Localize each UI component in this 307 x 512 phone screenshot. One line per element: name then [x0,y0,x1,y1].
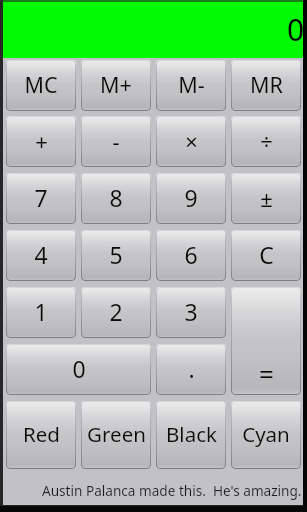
button[interactable]: + [6,116,76,167]
button[interactable]: 4 [6,230,76,281]
staticText: 2 [109,296,123,327]
button[interactable]: MR [231,60,301,111]
staticText: C [259,239,274,270]
staticText: 5 [109,239,123,270]
button[interactable]: Black [156,401,226,469]
staticText: ÷ [260,126,273,156]
staticText: 1 [34,296,48,327]
staticText: 9 [184,182,198,213]
button[interactable]: 0 [6,344,151,395]
staticText: - [112,126,120,156]
button[interactable]: C [231,230,301,281]
staticText: Red [23,420,60,448]
button[interactable]: 1 [6,287,76,338]
staticText: 6 [184,239,198,270]
button[interactable]: 5 [81,230,151,281]
staticText: Green [87,420,146,448]
staticText: Austin Palanca made this. He's amazing. [42,481,302,500]
button[interactable]: × [156,116,226,167]
staticText: 0 [287,9,305,50]
button[interactable]: 2 [81,287,151,338]
button[interactable]: . [156,344,226,395]
staticText: 7 [34,182,48,213]
button[interactable]: ÷ [231,116,301,167]
button[interactable]: ± [231,173,301,224]
staticText: ± [260,183,273,213]
staticText: . [188,353,195,384]
staticText: Black [166,420,217,448]
staticText: 8 [109,182,123,213]
button[interactable]: Red [6,401,76,469]
staticText: MC [24,70,58,99]
button[interactable]: M- [156,60,226,111]
staticText: M- [178,70,205,99]
button[interactable]: M+ [81,60,151,111]
button[interactable]: 8 [81,173,151,224]
button[interactable]: 6 [156,230,226,281]
button[interactable]: - [81,116,151,167]
staticText: M+ [100,70,132,99]
button[interactable]: 9 [156,173,226,224]
button[interactable]: MC [6,60,76,111]
staticText: 3 [184,296,198,327]
staticText: Cyan [242,420,290,448]
staticText: 0 [72,353,86,384]
button[interactable]: Green [81,401,151,469]
staticText: × [185,126,198,156]
staticText: = [259,356,274,391]
button[interactable]: = [231,287,301,395]
staticText: 4 [34,239,48,270]
staticText: + [35,126,48,156]
button[interactable]: Cyan [231,401,301,469]
staticText: MR [250,70,283,99]
button[interactable]: 3 [156,287,226,338]
button[interactable]: 7 [6,173,76,224]
